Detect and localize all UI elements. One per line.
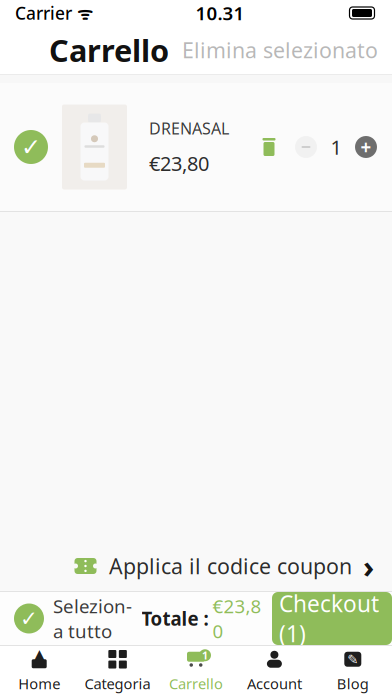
staticText: €23,80 bbox=[212, 594, 261, 643]
staticText: ▲ bbox=[33, 645, 46, 665]
staticText: 10.31 bbox=[195, 1, 244, 25]
staticText: › bbox=[363, 546, 374, 586]
button[interactable]: ✎ bbox=[314, 646, 392, 696]
staticText: Elimina selezionato bbox=[182, 36, 378, 64]
staticText: Carrello bbox=[49, 30, 169, 70]
button[interactable]: Elimina selezionato bbox=[182, 36, 378, 64]
staticText: Blog bbox=[337, 674, 369, 693]
staticText: ✓ bbox=[20, 606, 38, 631]
button[interactable]: Aumenta quantità bbox=[354, 135, 378, 159]
staticText: Applica il codice coupon bbox=[109, 552, 352, 580]
staticText: Home bbox=[18, 674, 60, 693]
button[interactable]: ✓ bbox=[0, 592, 132, 645]
staticText: €23,80 bbox=[149, 150, 209, 176]
staticText: Carrello bbox=[169, 674, 223, 693]
staticText: Seleziona tutto bbox=[53, 594, 132, 643]
staticText: DRENASAL bbox=[149, 118, 229, 139]
button[interactable]: Applica il codice coupon bbox=[0, 541, 392, 591]
button[interactable]: Account bbox=[235, 646, 314, 696]
button[interactable]: ▲ bbox=[0, 646, 78, 696]
staticText: ᯤ bbox=[72, 1, 93, 24]
button[interactable]: Elimina articolo bbox=[257, 135, 281, 159]
staticText: ✓ bbox=[21, 133, 41, 161]
staticText: 1 bbox=[202, 648, 208, 662]
button[interactable]: ✓ bbox=[0, 83, 392, 211]
button[interactable]: Diminuisci quantità bbox=[294, 135, 318, 159]
staticText: Totale : bbox=[141, 606, 208, 631]
staticText: Account bbox=[247, 674, 302, 693]
staticText: Carrier bbox=[15, 1, 72, 24]
button[interactable]: Categoria bbox=[78, 646, 157, 696]
staticText: 1 bbox=[330, 134, 341, 160]
staticText: Checkout (1) bbox=[279, 588, 385, 649]
staticText: ✎ bbox=[347, 652, 358, 667]
staticText: + bbox=[360, 135, 371, 159]
button[interactable]: 1 bbox=[157, 646, 235, 696]
staticText: Categoria bbox=[85, 674, 151, 693]
button[interactable]: Checkout (1) bbox=[272, 592, 392, 645]
